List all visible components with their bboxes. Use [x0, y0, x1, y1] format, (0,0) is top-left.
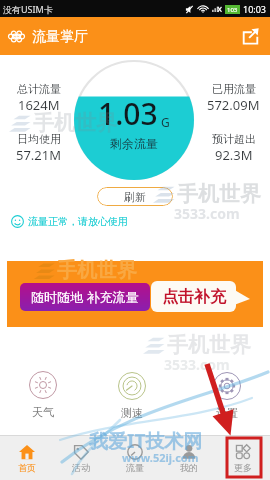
button[interactable]: 流量正常，请放心使用 — [11, 215, 128, 228]
staticText: 测速 — [121, 406, 143, 420]
staticText: 92.3M — [215, 146, 253, 164]
staticText: www.52ij.com — [122, 450, 199, 465]
button[interactable]: 我的 — [162, 444, 216, 473]
button[interactable]: 测速 — [118, 372, 146, 420]
staticText: 手机世界 — [57, 258, 137, 283]
staticText: 预计超出 — [212, 132, 256, 146]
staticText: 手机世界 — [167, 332, 251, 358]
staticText: 随时随地 补充流量 — [31, 288, 139, 306]
staticText: 总计流量 — [17, 82, 61, 96]
staticText: 3533.com — [164, 355, 230, 374]
staticText: G — [161, 114, 170, 130]
staticText: 57.21M — [16, 146, 62, 164]
staticText: 流量掌厅 — [32, 28, 88, 46]
staticText: 手机世界 — [177, 181, 261, 207]
button[interactable]: Share — [235, 21, 265, 51]
button[interactable]: 随时随地 补充流量 — [7, 261, 263, 327]
staticText: 1.03 — [98, 93, 158, 134]
button[interactable]: 更多 — [216, 444, 270, 473]
button[interactable]: 流量 — [108, 444, 162, 473]
staticText: 我的 — [180, 462, 198, 473]
staticText: 手机世界 — [33, 110, 117, 136]
staticText: 3533.com — [174, 204, 240, 223]
button[interactable]: 天气 — [29, 371, 57, 419]
staticText: 流量正常，请放心使用 — [28, 215, 128, 228]
staticText: 天气 — [32, 405, 54, 419]
staticText: 点击补充 — [162, 287, 226, 307]
staticText: 10:03 — [243, 3, 267, 15]
staticText: 更多 — [234, 462, 252, 473]
button[interactable]: 设置 — [213, 372, 241, 420]
staticText: 日均使用 — [17, 132, 61, 146]
staticText: 我爱IT技术网 — [89, 428, 203, 454]
button[interactable]: 活动 — [54, 444, 108, 473]
button[interactable]: 刷新 — [97, 187, 173, 206]
staticText: 首页 — [18, 462, 36, 473]
staticText: 剩余流量 — [110, 136, 158, 151]
staticText: 活动 — [72, 462, 90, 473]
button[interactable]: 首页 — [0, 444, 54, 473]
staticText: 1624M — [18, 96, 60, 114]
staticText: 设置 — [216, 406, 238, 420]
staticText: 103 — [227, 6, 238, 14]
staticText: 没有USIM卡 — [3, 3, 53, 15]
staticText: 流量 — [126, 462, 144, 473]
staticText: 刷新 — [124, 190, 146, 204]
staticText: 已用流量 — [212, 82, 256, 96]
staticText: 572.09M — [207, 96, 260, 114]
